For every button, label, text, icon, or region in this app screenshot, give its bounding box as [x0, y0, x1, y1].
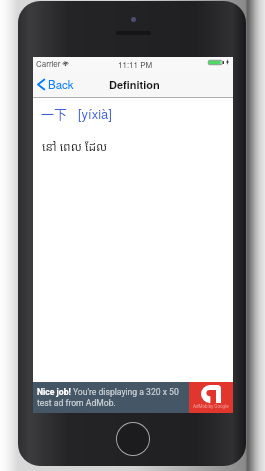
staticText: 一下 — [41, 104, 68, 123]
staticText: Nice job! You're displaying a 320 x 50 t… — [37, 387, 188, 408]
other: Home — [116, 422, 150, 456]
staticText: 11:11 PM — [118, 59, 153, 70]
staticText: Definition — [109, 77, 160, 93]
button[interactable]: Back — [35, 73, 80, 95]
staticText: Carrier — [36, 58, 61, 69]
button[interactable]: Nice job! You're displaying a 320 x 50 t… — [33, 382, 233, 413]
staticText: [yíxià] — [78, 104, 112, 123]
staticText: AdMob by Google — [193, 404, 229, 409]
staticText: នៅ ពេល ដែល — [42, 138, 108, 154]
staticText: Back — [48, 76, 74, 92]
